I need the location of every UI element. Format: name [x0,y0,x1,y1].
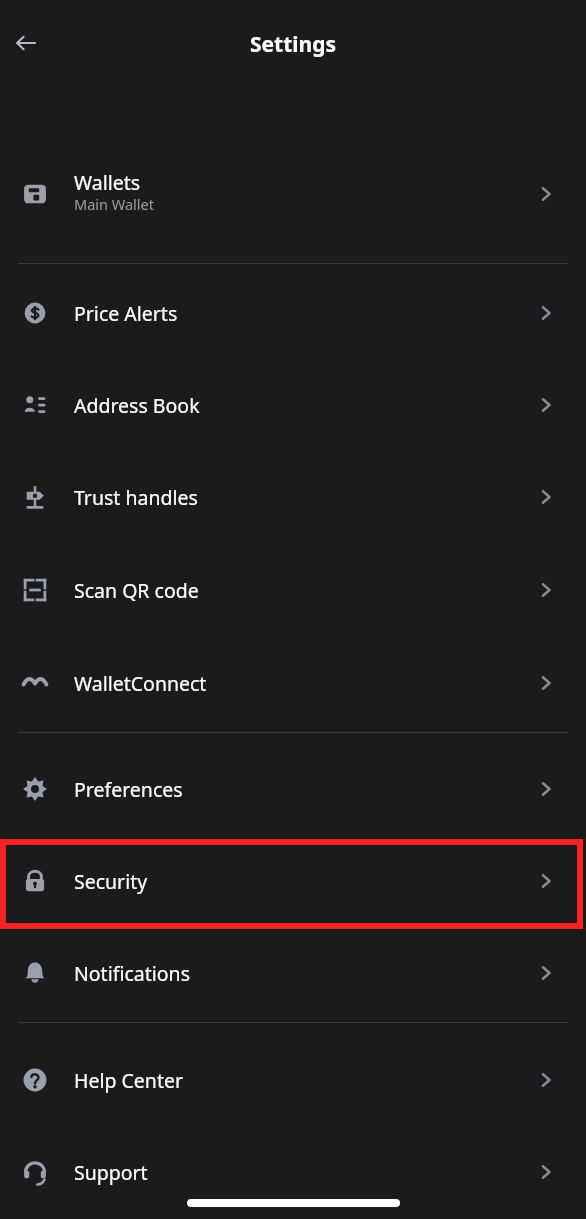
staticText: Main Wallet [74,194,154,214]
button[interactable]: Trust handles [0,451,586,543]
button[interactable]: Support [0,1126,586,1218]
staticText: Preferences [74,776,183,803]
button[interactable]: Preferences [0,743,586,835]
button[interactable]: Wallets [0,144,586,244]
staticText: Settings [0,30,586,59]
button[interactable]: WalletConnect [0,637,586,729]
button[interactable]: Security [0,835,586,927]
button[interactable]: Scan QR code [0,544,586,636]
staticText: WalletConnect [74,670,207,697]
staticText: Trust handles [74,484,198,511]
staticText: Price Alerts [74,300,178,327]
staticText: Support [74,1159,148,1186]
staticText: Wallets [74,169,141,196]
staticText: Scan QR code [74,577,199,604]
button[interactable]: Address Book [0,359,586,451]
button[interactable]: Price Alerts [0,267,586,359]
staticText: Help Center [74,1067,184,1094]
staticText: Notifications [74,960,190,987]
staticText: Address Book [74,392,200,419]
button[interactable]: Help Center [0,1034,586,1126]
button[interactable]: Notifications [0,927,586,1019]
staticText: Security [74,868,148,895]
button[interactable]: Back [6,23,46,63]
